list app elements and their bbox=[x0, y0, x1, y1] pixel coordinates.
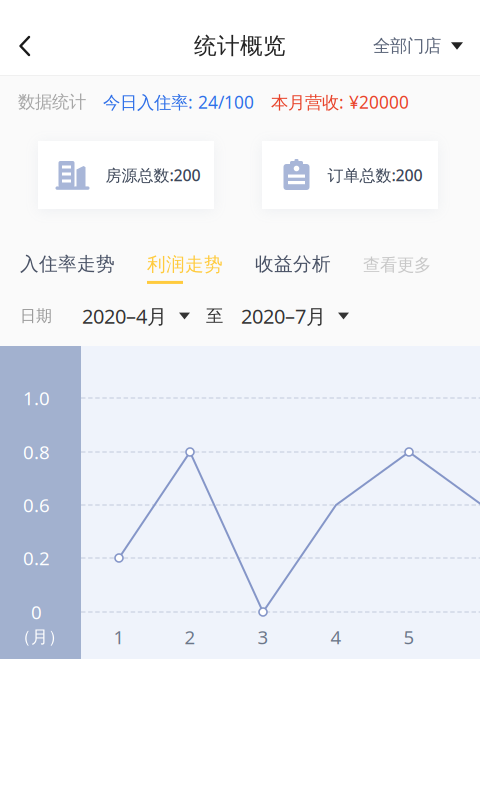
button[interactable]: 利润走势 bbox=[147, 253, 223, 297]
button[interactable]: 订单总数:200 bbox=[262, 141, 438, 209]
button[interactable]: 全部门店 bbox=[363, 26, 473, 66]
button[interactable]: 查看更多 bbox=[363, 245, 431, 285]
staticText: 至 bbox=[206, 305, 223, 327]
button[interactable]: Back bbox=[3, 24, 47, 68]
staticText: 本月营收: bbox=[271, 90, 349, 113]
button[interactable]: 2020–7月 bbox=[241, 299, 349, 333]
staticText: 全部门店 bbox=[373, 35, 441, 57]
staticText: 今日入住率: bbox=[103, 90, 198, 113]
button[interactable]: 收益分析 bbox=[255, 244, 331, 284]
staticText: ¥20000 bbox=[349, 90, 409, 113]
staticText: 入住率走势 bbox=[20, 252, 115, 275]
staticText: 数据统计 bbox=[18, 91, 86, 113]
staticText: 5 bbox=[403, 625, 414, 649]
staticText: 日期 bbox=[20, 306, 52, 326]
staticText: 3 bbox=[257, 625, 268, 649]
staticText: 0.8 bbox=[23, 440, 50, 464]
button[interactable]: 房源总数:200 bbox=[38, 141, 214, 209]
staticText: 0 bbox=[31, 600, 42, 624]
staticText: 1.0 bbox=[23, 386, 50, 410]
staticText: 2020–4月 bbox=[82, 303, 167, 329]
staticText: 统计概览 bbox=[194, 32, 286, 60]
staticText: 0.6 bbox=[23, 493, 50, 517]
staticText: 0.2 bbox=[23, 546, 50, 570]
button[interactable]: 入住率走势 bbox=[20, 244, 115, 284]
staticText: 房源总数:200 bbox=[105, 164, 200, 186]
staticText: 1 bbox=[113, 625, 124, 649]
staticText: 利润走势 bbox=[147, 253, 223, 276]
staticText: 4 bbox=[330, 625, 341, 649]
staticText: 订单总数:200 bbox=[327, 164, 422, 186]
staticText: 查看更多 bbox=[363, 254, 431, 276]
staticText: 2 bbox=[184, 625, 195, 649]
staticText: 24/100 bbox=[198, 90, 254, 113]
staticText: 收益分析 bbox=[255, 252, 331, 275]
button[interactable]: 2020–4月 bbox=[82, 299, 190, 333]
staticText: 2020–7月 bbox=[241, 303, 326, 329]
staticText: （月） bbox=[14, 626, 65, 648]
